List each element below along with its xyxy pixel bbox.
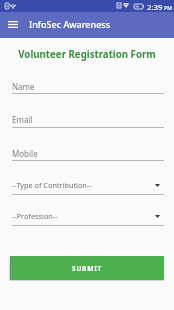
staticText: SUBMIT: [72, 264, 103, 273]
button[interactable]: Name: [12, 77, 164, 96]
button[interactable]: Email: [12, 110, 164, 129]
button[interactable]: Mobile: [12, 144, 164, 163]
button[interactable]: Open navigation menu: [4, 16, 21, 33]
button[interactable]: --Profession--: [12, 207, 164, 227]
staticText: Volunteer Registration Form: [0, 48, 174, 61]
staticText: Mobile: [12, 148, 38, 159]
staticText: --Profession--: [12, 211, 58, 221]
button[interactable]: SUBMIT: [10, 256, 164, 280]
staticText: --Type of Contribution--: [12, 180, 92, 190]
staticText: Name: [12, 81, 35, 92]
staticText: 2:39: [147, 2, 163, 13]
staticText: PM: [164, 4, 173, 11]
staticText: Email: [12, 114, 33, 125]
button[interactable]: --Type of Contribution--: [12, 176, 164, 196]
staticText: InfoSec Awareness: [29, 18, 111, 30]
